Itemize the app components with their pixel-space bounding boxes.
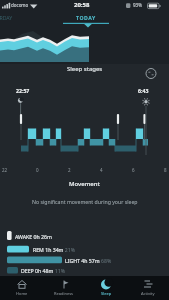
staticText: 6:43	[138, 87, 149, 94]
staticText: YESTERDAY	[0, 14, 13, 21]
staticText: 6	[132, 167, 135, 173]
staticText: 20:58	[74, 1, 90, 9]
staticText: REM 1h 34m 21%	[33, 246, 76, 253]
button[interactable]: YESTERDAY	[0, 14, 13, 21]
staticText: 22	[2, 167, 8, 173]
staticText: Sleep	[101, 291, 112, 296]
button[interactable]: TODAY	[76, 14, 96, 21]
staticText: Activity	[141, 291, 155, 296]
staticText: LIGHT 4h 57m 68%	[65, 257, 112, 264]
staticText: 93%	[133, 2, 142, 8]
staticText: AWAKE 0h 26m	[15, 233, 52, 240]
staticText: Readiness	[54, 291, 74, 296]
button[interactable]: Activity	[127, 276, 169, 300]
staticText: docomo	[11, 2, 29, 8]
staticText: 2	[68, 167, 71, 173]
staticText: 8	[164, 167, 167, 173]
button[interactable]: Home	[0, 276, 43, 300]
staticText: Sleep stages	[67, 65, 103, 73]
staticText: 4	[100, 167, 103, 173]
staticText: 0	[36, 167, 39, 173]
button[interactable]: Readiness	[43, 276, 85, 300]
button[interactable]: Sleep	[85, 276, 127, 300]
staticText: 22:57	[16, 87, 30, 94]
staticText: Movement	[69, 180, 100, 188]
staticText: Home	[16, 291, 28, 296]
staticText: No significant movement during your slee…	[32, 198, 138, 205]
button[interactable]	[142, 64, 161, 83]
staticText: DEEP 0h 48m 11%	[21, 267, 65, 274]
